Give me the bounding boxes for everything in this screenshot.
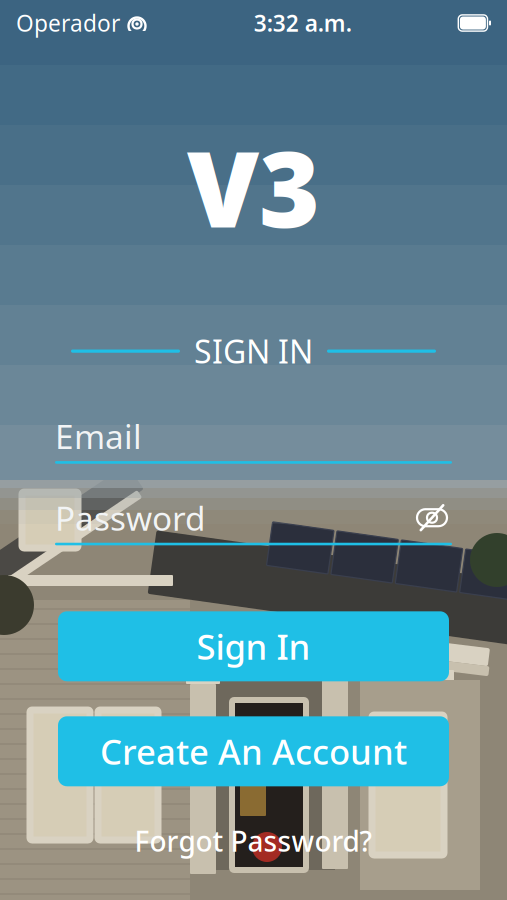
staticText: Forgot Password? bbox=[134, 822, 372, 859]
staticText: SIGN IN bbox=[194, 330, 313, 372]
staticText: Sign In bbox=[196, 623, 310, 669]
staticText: Email bbox=[55, 414, 142, 458]
staticText: Create An Account bbox=[100, 728, 407, 774]
staticText: Operador bbox=[16, 8, 120, 38]
staticText: 3:32 a.m. bbox=[254, 8, 352, 38]
staticText: V3 bbox=[187, 118, 320, 256]
button[interactable]: Sign In bbox=[58, 611, 449, 681]
button[interactable]: Create An Account bbox=[58, 716, 449, 786]
staticText: Password bbox=[55, 496, 206, 540]
button[interactable]: Forgot Password? bbox=[0, 816, 507, 865]
button[interactable]: Show password bbox=[412, 502, 452, 534]
